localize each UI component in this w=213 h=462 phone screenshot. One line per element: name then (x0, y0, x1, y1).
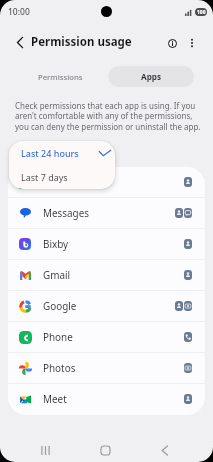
staticText: Calendar (43, 175, 85, 188)
button[interactable]: Back (135, 436, 195, 462)
button[interactable]: Information (162, 33, 182, 53)
button[interactable]: Gmail (8, 260, 205, 290)
button[interactable]: Google (8, 291, 205, 321)
staticText: Last 7 days (21, 171, 68, 183)
staticText: Bixby (43, 237, 69, 250)
staticText: Gmail (43, 268, 71, 281)
staticText: Photos (43, 361, 76, 374)
button[interactable]: Permissions (13, 66, 108, 87)
staticText: 100 (197, 9, 206, 16)
button[interactable]: Last 24 hours (9, 141, 115, 165)
staticText: Phone (43, 330, 73, 343)
button[interactable]: Bixby (8, 229, 205, 259)
staticText: 10:00 (8, 6, 30, 18)
button[interactable]: Navigate up (9, 32, 30, 53)
button[interactable]: Messages (8, 198, 205, 228)
staticText: Google (43, 299, 77, 312)
button[interactable]: Meet (8, 384, 205, 414)
button[interactable]: Photos (8, 353, 205, 383)
staticText: Permission usage (31, 34, 132, 50)
button[interactable]: Phone (8, 322, 205, 352)
button[interactable]: Home (75, 436, 135, 462)
button[interactable]: Recent apps (16, 436, 75, 462)
staticText: Permissions (38, 72, 83, 82)
staticText: Last 24 hours (21, 147, 79, 159)
button[interactable]: More options (182, 33, 202, 53)
button[interactable]: Apps (108, 66, 194, 87)
button[interactable]: Last 7 days (9, 165, 115, 189)
staticText: Messages (43, 206, 89, 219)
staticText: Meet (43, 392, 67, 405)
staticText: Check permissions that each app is using… (15, 100, 203, 133)
button[interactable]: Calendar (8, 167, 205, 197)
staticText: Apps (141, 71, 162, 82)
